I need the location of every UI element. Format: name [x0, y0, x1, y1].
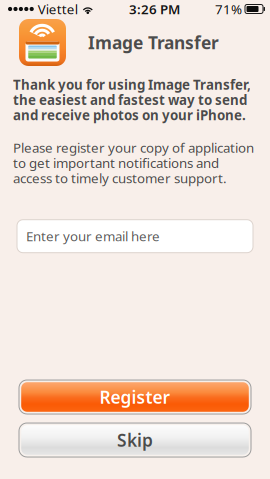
- staticText: Please register your copy of application: [13, 139, 254, 156]
- staticText: access to timely customer support.: [13, 169, 227, 187]
- staticText: Image Transfer: [88, 31, 219, 54]
- staticText: to get important notifications and: [13, 154, 219, 172]
- button[interactable]: Register: [19, 380, 251, 414]
- staticText: Register: [99, 385, 170, 408]
- staticText: Enter your email here: [26, 227, 160, 245]
- button[interactable]: Skip: [19, 423, 251, 457]
- staticText: 71%: [215, 0, 242, 18]
- staticText: the easiest and fastest way to send: [13, 91, 247, 109]
- staticText: and receive photos on your iPhone.: [13, 106, 246, 124]
- staticText: Viettel: [38, 0, 78, 18]
- staticText: Thank you for using Image Transfer,: [13, 76, 251, 93]
- staticText: 3:26 PM: [129, 0, 180, 18]
- staticText: Skip: [117, 428, 153, 451]
- button[interactable]: Enter your email here: [17, 220, 253, 253]
